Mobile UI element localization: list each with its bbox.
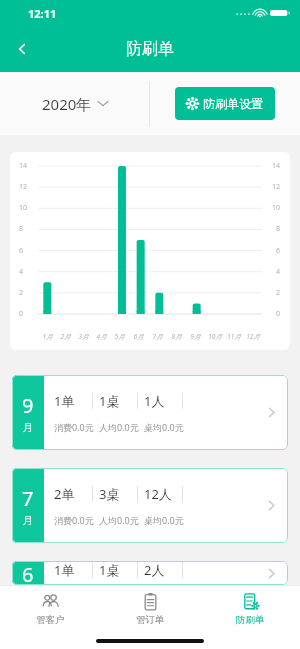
button[interactable]: 6 <box>12 561 288 585</box>
staticText: 2 <box>276 288 281 298</box>
button[interactable]: 9 <box>12 375 288 450</box>
staticText: 0 <box>276 309 281 319</box>
staticText: 5月 <box>114 332 125 341</box>
staticText: 12 <box>19 182 28 192</box>
staticText: 管订单 <box>136 614 165 626</box>
button[interactable]: Back <box>0 27 44 71</box>
staticText: 防刷单 <box>126 39 174 59</box>
staticText: 桌均0.0元 <box>144 421 184 433</box>
staticText: 12人 <box>144 485 172 503</box>
staticText: 管客户 <box>36 614 65 626</box>
staticText: 3桌 <box>99 485 120 503</box>
staticText: 3月 <box>78 332 89 341</box>
staticText: 11月 <box>227 332 241 341</box>
staticText: 1桌 <box>99 561 120 579</box>
staticText: 消费0.0元 <box>54 421 94 433</box>
button[interactable]: 管客户 <box>0 586 100 631</box>
staticText: 8月 <box>171 332 182 341</box>
button[interactable]: 2020年 <box>0 72 149 135</box>
staticText: 2 <box>19 288 24 298</box>
staticText: 1月 <box>42 332 53 341</box>
staticText: 6 <box>22 561 34 585</box>
staticText: 12月 <box>246 332 260 341</box>
staticText: 6 <box>276 246 281 256</box>
button[interactable]: 7 <box>12 468 288 543</box>
staticText: 8 <box>19 224 24 234</box>
staticText: 14 <box>272 161 281 171</box>
staticText: 6 <box>19 246 24 256</box>
staticText: 0 <box>19 309 24 319</box>
staticText: 2月 <box>60 332 71 341</box>
staticText: 1人 <box>144 392 165 410</box>
staticText: 4月 <box>96 332 107 341</box>
staticText: 10 <box>19 203 28 213</box>
staticText: 2020年 <box>42 94 92 114</box>
staticText: 10 <box>272 203 281 213</box>
staticText: 14 <box>19 161 28 171</box>
staticText: 8 <box>276 224 281 234</box>
staticText: 10月 <box>208 332 222 341</box>
staticText: 2单 <box>54 485 75 503</box>
button[interactable]: 防刷单设置 <box>175 87 275 120</box>
staticText: 人均0.0元 <box>99 514 139 526</box>
staticText: 12 <box>272 182 281 192</box>
staticText: 防刷单设置 <box>203 96 263 111</box>
staticText: 4 <box>276 267 281 277</box>
staticText: 2人 <box>144 561 165 579</box>
staticText: 7 <box>22 485 34 512</box>
staticText: 人均0.0元 <box>99 421 139 433</box>
staticText: 6月 <box>133 332 144 341</box>
button[interactable]: 防刷单 <box>200 586 300 631</box>
staticText: 9月 <box>190 332 201 341</box>
staticText: 月 <box>23 421 33 434</box>
staticText: 桌均0.0元 <box>144 514 184 526</box>
staticText: 4 <box>19 267 24 277</box>
staticText: 12:11 <box>28 6 57 21</box>
staticText: 月 <box>23 514 33 527</box>
staticText: 1单 <box>54 392 75 410</box>
staticText: 7月 <box>152 332 163 341</box>
staticText: 消费0.0元 <box>54 514 94 526</box>
staticText: 9 <box>22 392 34 419</box>
staticText: 1桌 <box>99 392 120 410</box>
staticText: 1单 <box>54 561 75 579</box>
button[interactable]: 管订单 <box>100 586 200 631</box>
staticText: 防刷单 <box>236 614 265 626</box>
